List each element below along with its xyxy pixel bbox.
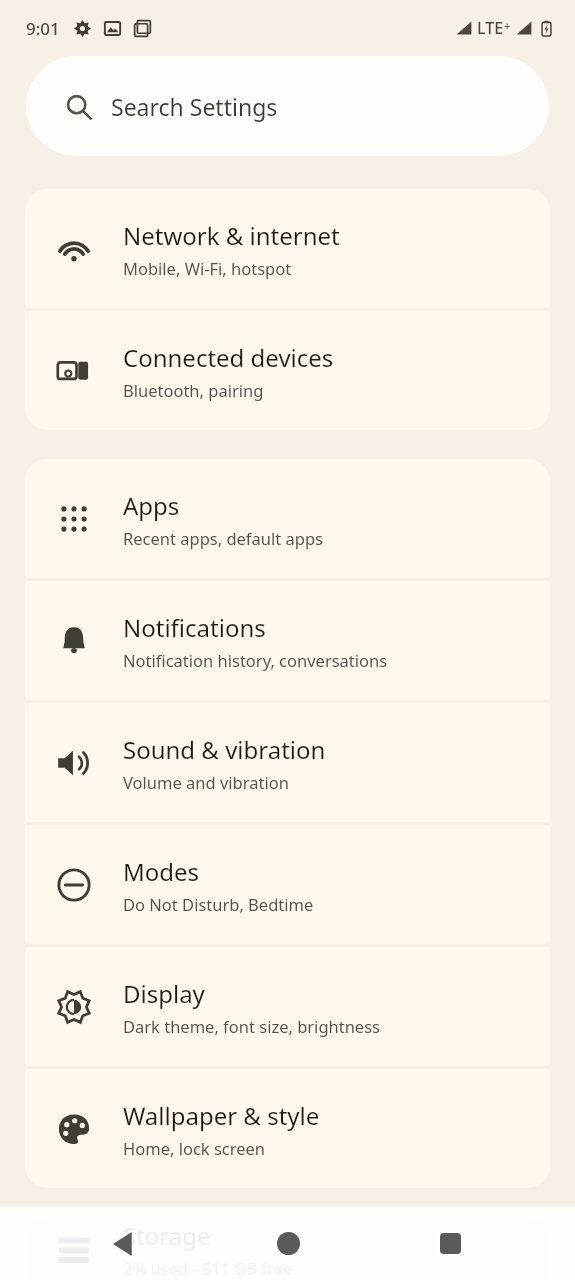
- staticText: LTE: [477, 17, 504, 39]
- button[interactable]: Display: [25, 947, 550, 1066]
- staticText: Notifications: [123, 611, 266, 644]
- staticText: Apps: [123, 489, 180, 522]
- button[interactable]: Storage: [25, 1217, 550, 1280]
- button[interactable]: Back: [87, 1207, 163, 1280]
- staticText: Wallpaper & style: [123, 1099, 320, 1132]
- staticText: Display: [123, 977, 205, 1010]
- staticText: +: [504, 18, 511, 33]
- staticText: Search Settings: [111, 91, 278, 122]
- staticText: Network & internet: [123, 219, 340, 252]
- button[interactable]: Home: [250, 1207, 326, 1280]
- staticText: Do Not Disturb, Bedtime: [123, 893, 314, 915]
- staticText: Notification history, conversations: [123, 649, 388, 671]
- staticText: Recent apps, default apps: [123, 527, 323, 549]
- button[interactable]: Wallpaper & style: [25, 1069, 550, 1188]
- staticText: 9:01: [26, 17, 60, 40]
- button[interactable]: Network & internet: [25, 189, 550, 308]
- button[interactable]: Notifications: [25, 581, 550, 700]
- staticText: Volume and vibration: [123, 771, 289, 793]
- staticText: Storage: [123, 1219, 211, 1252]
- button[interactable]: Recent apps: [412, 1207, 488, 1280]
- staticText: Modes: [123, 855, 200, 888]
- button[interactable]: Modes: [25, 825, 550, 944]
- button[interactable]: Sound & vibration: [25, 703, 550, 822]
- staticText: Home, lock screen: [123, 1137, 266, 1159]
- staticText: Bluetooth, pairing: [123, 379, 264, 401]
- staticText: Dark theme, font size, brightness: [123, 1015, 380, 1037]
- staticText: Sound & vibration: [123, 733, 326, 766]
- staticText: 2% used - 511 GB free: [123, 1257, 293, 1279]
- button[interactable]: Apps: [25, 459, 550, 578]
- button[interactable]: Search Settings: [26, 56, 549, 156]
- staticText: Connected devices: [123, 341, 334, 374]
- button[interactable]: Connected devices: [25, 311, 550, 430]
- staticText: Mobile, Wi-Fi, hotspot: [123, 257, 292, 279]
